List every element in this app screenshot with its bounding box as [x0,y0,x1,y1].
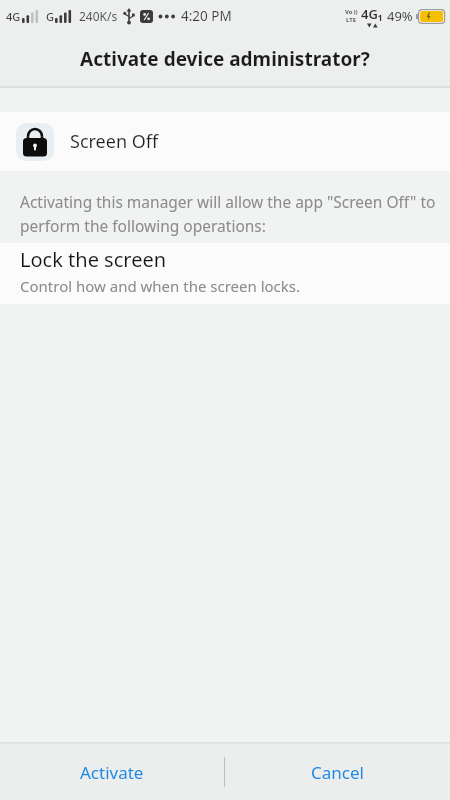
button[interactable]: Activate [0,744,224,800]
staticText: 240K/s [79,8,118,24]
staticText: G [46,9,54,24]
staticText: Activating this manager will allow the a… [20,191,436,212]
staticText: LTE [346,16,357,24]
staticText: perform the following operations: [20,215,266,236]
staticText: 4G₁ [361,5,383,23]
staticText: Activate device administrator? [80,46,370,72]
staticText: Activate [80,761,144,784]
staticText: 49% [387,7,413,25]
staticText: Cancel [311,761,364,784]
staticText: 4G [6,9,21,24]
staticText: 4:20 PM [181,7,232,25]
button[interactable]: Screen Off [0,112,450,171]
staticText: Screen Off [70,129,159,154]
staticText: Vo )) [345,8,358,16]
button[interactable]: Cancel [225,744,450,800]
staticText: Lock the screen [20,246,167,273]
staticText: Control how and when the screen locks. [20,276,300,296]
